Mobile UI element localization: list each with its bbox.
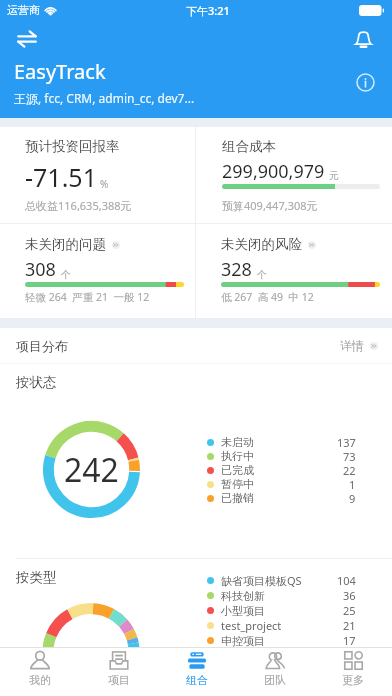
staticText: 按状态 [16, 374, 57, 391]
button[interactable]: 详情 [340, 338, 378, 353]
button[interactable]: 预计投资回报率 [0, 127, 195, 223]
staticText: 团队 [264, 673, 286, 687]
staticText: 科技创新 [221, 589, 265, 603]
button[interactable]: 缺省项目模板QS [207, 573, 356, 588]
button[interactable]: 更多 [314, 648, 392, 696]
button[interactable]: 团队 [236, 648, 314, 696]
button[interactable]: 小型项目 [207, 603, 356, 618]
staticText: 个 [257, 268, 267, 281]
staticText: 总收益116,635,388元 [25, 198, 132, 213]
button[interactable]: Switch portfolio [10, 22, 44, 56]
staticText: 详情 [340, 338, 364, 353]
staticText: 1 [349, 477, 356, 491]
button[interactable]: 组合 [158, 648, 236, 696]
button[interactable]: 未关闭的风险 [196, 224, 392, 318]
button[interactable]: 科技创新 [207, 588, 356, 603]
button[interactable]: 未关闭的问题 [0, 224, 195, 318]
staticText: 25 [343, 603, 356, 618]
staticText: 更多 [342, 673, 364, 687]
staticText: 轻微 264 严重 21 一般 12 [25, 290, 150, 304]
staticText: 按类型 [16, 569, 57, 586]
staticText: 137 [337, 435, 356, 449]
staticText: 小型项目 [221, 604, 265, 618]
staticText: 项目 [108, 673, 130, 687]
staticText: 未关闭的问题 [25, 236, 106, 253]
staticText: 328 [221, 257, 252, 282]
staticText: 未关闭的风险 [221, 236, 302, 253]
button[interactable]: 组合成本 [196, 127, 392, 223]
staticText: 104 [337, 573, 356, 588]
staticText: EasyTrack [14, 58, 106, 85]
staticText: 暂停中 [221, 477, 254, 491]
staticText: 执行中 [221, 449, 254, 463]
button[interactable]: 项目 [79, 648, 158, 696]
button[interactable]: 已完成 [207, 463, 356, 477]
button[interactable]: 已撤销 [207, 491, 356, 505]
button[interactable]: 我的 [0, 648, 79, 696]
staticText: 36 [343, 588, 356, 603]
staticText: test_project [221, 618, 282, 633]
button[interactable]: 暂停中 [207, 477, 356, 491]
button[interactable]: Info [350, 67, 380, 97]
staticText: 缺省项目模板QS [221, 573, 302, 588]
staticText: 已撤销 [221, 491, 254, 505]
staticText: 预算409,447,308元 [222, 198, 318, 213]
staticText: 17 [343, 633, 356, 648]
staticText: 21 [343, 618, 356, 633]
staticText: 下午3:21 [186, 3, 230, 18]
staticText: 组合成本 [222, 138, 276, 155]
staticText: 242 [64, 448, 119, 492]
staticText: 项目分布 [16, 338, 68, 354]
button[interactable]: 执行中 [207, 449, 356, 463]
staticText: 预计投资回报率 [25, 138, 120, 155]
button[interactable]: Notifications [346, 22, 380, 56]
button[interactable]: test_project [207, 618, 356, 633]
staticText: 未启动 [221, 435, 254, 449]
staticText: 已完成 [221, 463, 254, 477]
staticText: 组合 [186, 673, 208, 687]
staticText: 73 [343, 449, 356, 463]
staticText: 申控项目 [221, 634, 265, 648]
staticText: -71.51 [25, 160, 97, 194]
staticText: % [100, 177, 109, 191]
button[interactable]: 未启动 [207, 435, 356, 449]
staticText: 元 [329, 169, 339, 182]
staticText: 299,900,979 [222, 159, 325, 184]
button[interactable]: 申控项目 [207, 633, 356, 648]
staticText: 22 [343, 463, 356, 477]
staticText: 我的 [29, 673, 51, 687]
staticText: 个 [61, 268, 71, 281]
staticText: 低 267 高 49 中 12 [221, 290, 314, 304]
staticText: 9 [349, 491, 356, 505]
staticText: 王源, fcc, CRM, admin_cc, dev7... [14, 90, 195, 106]
staticText: 308 [25, 257, 56, 282]
staticText: 运营商 [7, 3, 40, 17]
